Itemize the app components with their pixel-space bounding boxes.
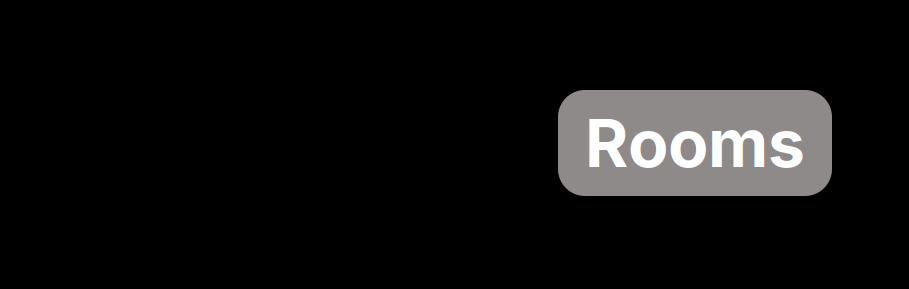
staticText: Rooms xyxy=(585,103,805,183)
button[interactable]: Rooms xyxy=(558,90,832,196)
